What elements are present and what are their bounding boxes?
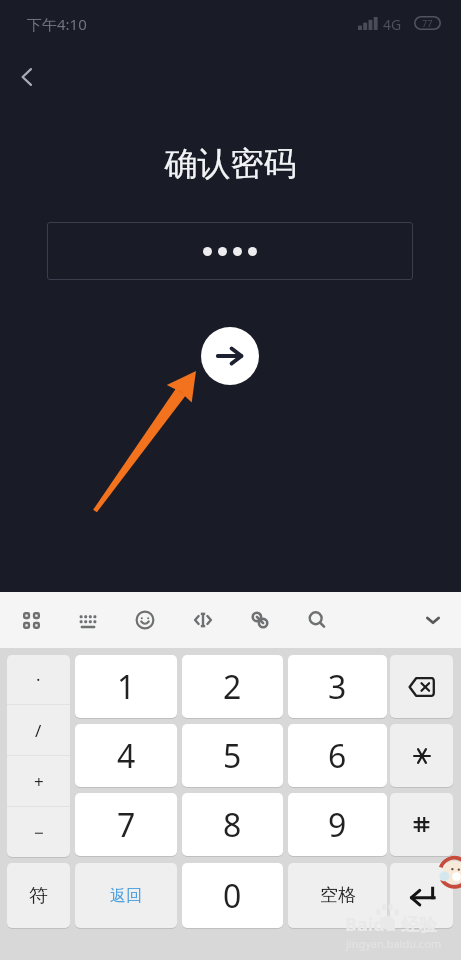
button[interactable]: 空格 xyxy=(288,863,387,928)
button[interactable]: 1 xyxy=(75,655,177,718)
staticText: 9 xyxy=(328,803,347,847)
button[interactable]: 3 xyxy=(288,655,387,718)
button[interactable]: 返回 xyxy=(75,863,177,928)
button[interactable]: 符 xyxy=(7,863,70,928)
button[interactable]: Back xyxy=(5,55,49,99)
button[interactable]: 9 xyxy=(288,793,387,856)
button[interactable] xyxy=(47,222,413,280)
staticText: − xyxy=(34,821,44,844)
button[interactable]: Keyboard xyxy=(68,600,108,640)
button[interactable]: Search xyxy=(297,600,337,640)
button[interactable]: / xyxy=(7,705,70,755)
staticText: 下午4:10 xyxy=(27,14,87,34)
button[interactable]: 0 xyxy=(182,863,283,928)
staticText: · xyxy=(36,668,41,691)
staticText: Baidu 经验 xyxy=(345,912,437,937)
button[interactable]: Hide keyboard xyxy=(413,600,453,640)
button[interactable]: Enter xyxy=(390,863,453,928)
button[interactable]: Asterisk xyxy=(390,724,453,787)
staticText: + xyxy=(34,770,44,793)
staticText: 5 xyxy=(223,734,242,778)
staticText: 空格 xyxy=(320,884,356,907)
button[interactable]: 4 xyxy=(75,724,177,787)
staticText: / xyxy=(35,719,42,742)
staticText: 6 xyxy=(328,734,347,778)
button[interactable]: 7 xyxy=(75,793,177,856)
staticText: 确认密码 xyxy=(0,143,461,185)
staticText: 4G xyxy=(383,15,402,34)
button[interactable]: Panel xyxy=(11,600,51,640)
button[interactable]: 6 xyxy=(288,724,387,787)
button[interactable]: Clipboard xyxy=(240,600,280,640)
button[interactable]: Move cursor xyxy=(183,600,223,640)
button[interactable]: 2 xyxy=(182,655,283,718)
staticText: 8 xyxy=(223,803,242,847)
staticText: jingyan.baidu.com xyxy=(346,936,442,951)
staticText: 7 xyxy=(117,803,136,847)
button[interactable]: − xyxy=(7,807,70,857)
button[interactable]: Hash xyxy=(390,793,453,856)
staticText: 0 xyxy=(223,874,242,918)
button[interactable]: 8 xyxy=(182,793,283,856)
staticText: 符 xyxy=(29,884,48,908)
staticText: 3 xyxy=(328,665,347,709)
staticText: 77 xyxy=(422,17,433,29)
button[interactable]: · xyxy=(7,655,70,704)
staticText: 2 xyxy=(223,665,242,709)
staticText: 1 xyxy=(117,665,136,709)
button[interactable]: Next xyxy=(201,327,259,385)
button[interactable]: Emoji xyxy=(125,600,165,640)
staticText: 返回 xyxy=(110,886,142,906)
button[interactable]: Backspace xyxy=(390,655,453,718)
button[interactable]: 5 xyxy=(182,724,283,787)
staticText: 4 xyxy=(117,734,136,778)
button[interactable]: + xyxy=(7,756,70,806)
